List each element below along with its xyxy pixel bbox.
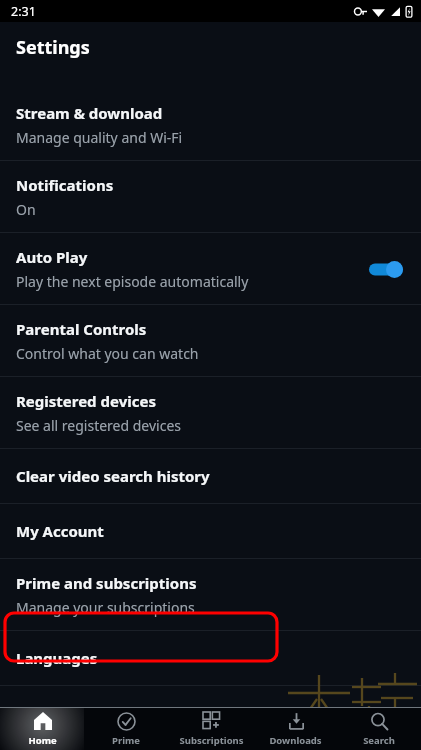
staticText: Search bbox=[363, 734, 395, 747]
staticText: Manage your subscriptions bbox=[16, 598, 195, 617]
button[interactable]: Downloads bbox=[253, 708, 337, 750]
button[interactable]: Auto Play bbox=[0, 233, 421, 304]
staticText: 2:31 bbox=[11, 3, 36, 20]
button[interactable]: Registered devices bbox=[0, 377, 421, 448]
button[interactable]: Prime bbox=[84, 708, 168, 750]
staticText: On bbox=[16, 200, 36, 219]
button[interactable]: Clear video search history bbox=[0, 449, 421, 503]
button[interactable]: Home bbox=[0, 708, 84, 750]
staticText: Registered devices bbox=[16, 391, 156, 411]
staticText: Settings bbox=[16, 35, 90, 60]
button[interactable]: Notifications bbox=[0, 161, 421, 232]
staticText: Prime and subscriptions bbox=[16, 573, 197, 593]
button[interactable]: Subscriptions bbox=[169, 708, 253, 750]
staticText: Clear video search history bbox=[16, 466, 210, 486]
staticText: Auto Play bbox=[16, 247, 88, 267]
staticText: See all registered devices bbox=[16, 416, 182, 435]
button[interactable]: Parental Controls bbox=[0, 305, 421, 376]
button[interactable]: Stream & download bbox=[0, 89, 421, 160]
button[interactable]: My Account bbox=[0, 504, 421, 558]
button[interactable]: Search bbox=[337, 708, 421, 750]
staticText: Downloads bbox=[269, 734, 322, 747]
staticText: Notifications bbox=[16, 175, 114, 195]
staticText: Control what you can watch bbox=[16, 344, 199, 363]
staticText: My Account bbox=[16, 521, 104, 541]
button[interactable]: Hidden videos bbox=[0, 686, 421, 740]
staticText: Stream & download bbox=[16, 103, 163, 123]
staticText: Manage quality and Wi-Fi bbox=[16, 128, 183, 147]
staticText: Parental Controls bbox=[16, 319, 147, 339]
button[interactable]: Auto Play toggle bbox=[365, 257, 407, 282]
button[interactable]: Languages bbox=[0, 631, 421, 685]
staticText: Languages bbox=[16, 648, 98, 668]
button[interactable]: Prime and subscriptions bbox=[0, 559, 421, 630]
staticText: Subscriptions bbox=[179, 734, 244, 747]
staticText: Home bbox=[28, 734, 57, 747]
staticText: Prime bbox=[112, 734, 140, 747]
staticText: Hidden videos bbox=[16, 703, 122, 723]
staticText: Play the next episode automatically bbox=[16, 272, 249, 291]
